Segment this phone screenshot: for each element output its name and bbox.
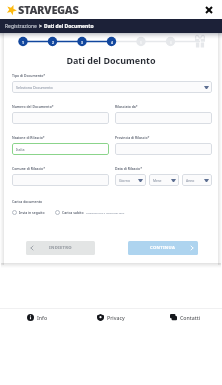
staticText: Dati del Documento bbox=[44, 23, 94, 30]
staticText: Comune di Rilascio* bbox=[12, 166, 46, 171]
button[interactable]: Mese bbox=[149, 174, 179, 186]
button[interactable]: Chiudi bbox=[201, 2, 217, 18]
staticText: 4 bbox=[111, 40, 113, 45]
staticText: Seleziona Documento bbox=[16, 85, 53, 90]
button[interactable]: Step 2 bbox=[48, 37, 58, 47]
staticText: Data di Rilascio* bbox=[115, 166, 143, 171]
staticText: Mese bbox=[153, 178, 162, 183]
button[interactable]: Privacy bbox=[74, 308, 148, 327]
button[interactable] bbox=[12, 174, 109, 186]
staticText: STARVEGAS bbox=[18, 2, 79, 17]
button[interactable]: Carica subito bbox=[55, 210, 84, 215]
staticText: Rilasciato da* bbox=[115, 104, 138, 109]
staticText: Dati del Documento bbox=[3, 54, 219, 66]
button[interactable]: Contatti bbox=[148, 308, 222, 327]
button[interactable] bbox=[115, 112, 212, 124]
staticText: 6 bbox=[170, 40, 172, 45]
staticText: Carica subito bbox=[62, 210, 84, 215]
staticText: Tipo di Documento* bbox=[12, 73, 46, 78]
staticText: 2 bbox=[52, 40, 54, 45]
staticText: 1 bbox=[22, 40, 24, 45]
staticText: Provincia di Rilascio* bbox=[115, 135, 150, 140]
button[interactable]: Step 6 bbox=[166, 37, 176, 47]
button[interactable]: Step 4 bbox=[107, 37, 117, 47]
staticText: Nazione di Rilascio* bbox=[12, 135, 45, 140]
staticText: CONTINUA bbox=[150, 245, 176, 251]
staticText: Italia bbox=[16, 147, 25, 152]
button[interactable]: Step 3 bbox=[77, 37, 87, 47]
button[interactable] bbox=[12, 112, 109, 124]
button[interactable]: Italia bbox=[12, 143, 109, 155]
staticText: Contatti bbox=[180, 314, 201, 321]
staticText: Carica documento bbox=[12, 199, 43, 204]
staticText: Info bbox=[37, 314, 48, 321]
staticText: Privacy bbox=[107, 314, 125, 321]
button[interactable]: Anno bbox=[182, 174, 212, 186]
button[interactable]: Step 1 bbox=[18, 37, 28, 47]
staticText: Invia in seguito bbox=[19, 210, 45, 215]
button[interactable]: INDIETRO bbox=[26, 241, 95, 255]
button[interactable]: Seleziona Documento bbox=[12, 81, 212, 93]
staticText: Registrazione bbox=[5, 23, 37, 30]
button[interactable]: Invia in seguito bbox=[12, 210, 45, 215]
button[interactable]: Step 5 bbox=[136, 37, 146, 47]
button[interactable]: Giorno bbox=[115, 174, 146, 186]
button[interactable]: CONTINUA bbox=[128, 241, 198, 255]
staticText: Giorno bbox=[119, 178, 130, 183]
staticText: > bbox=[39, 23, 42, 30]
button[interactable]: Info bbox=[0, 308, 74, 327]
staticText: 3 bbox=[81, 40, 83, 45]
button[interactable] bbox=[115, 143, 212, 155]
staticText: INDIETRO bbox=[49, 245, 72, 251]
staticText: Anno bbox=[186, 178, 195, 183]
staticText: 5 bbox=[140, 40, 142, 45]
staticText: ti bastano solo 2 minuti per farlo bbox=[86, 211, 125, 214]
staticText: Numero del Documento* bbox=[12, 104, 54, 109]
